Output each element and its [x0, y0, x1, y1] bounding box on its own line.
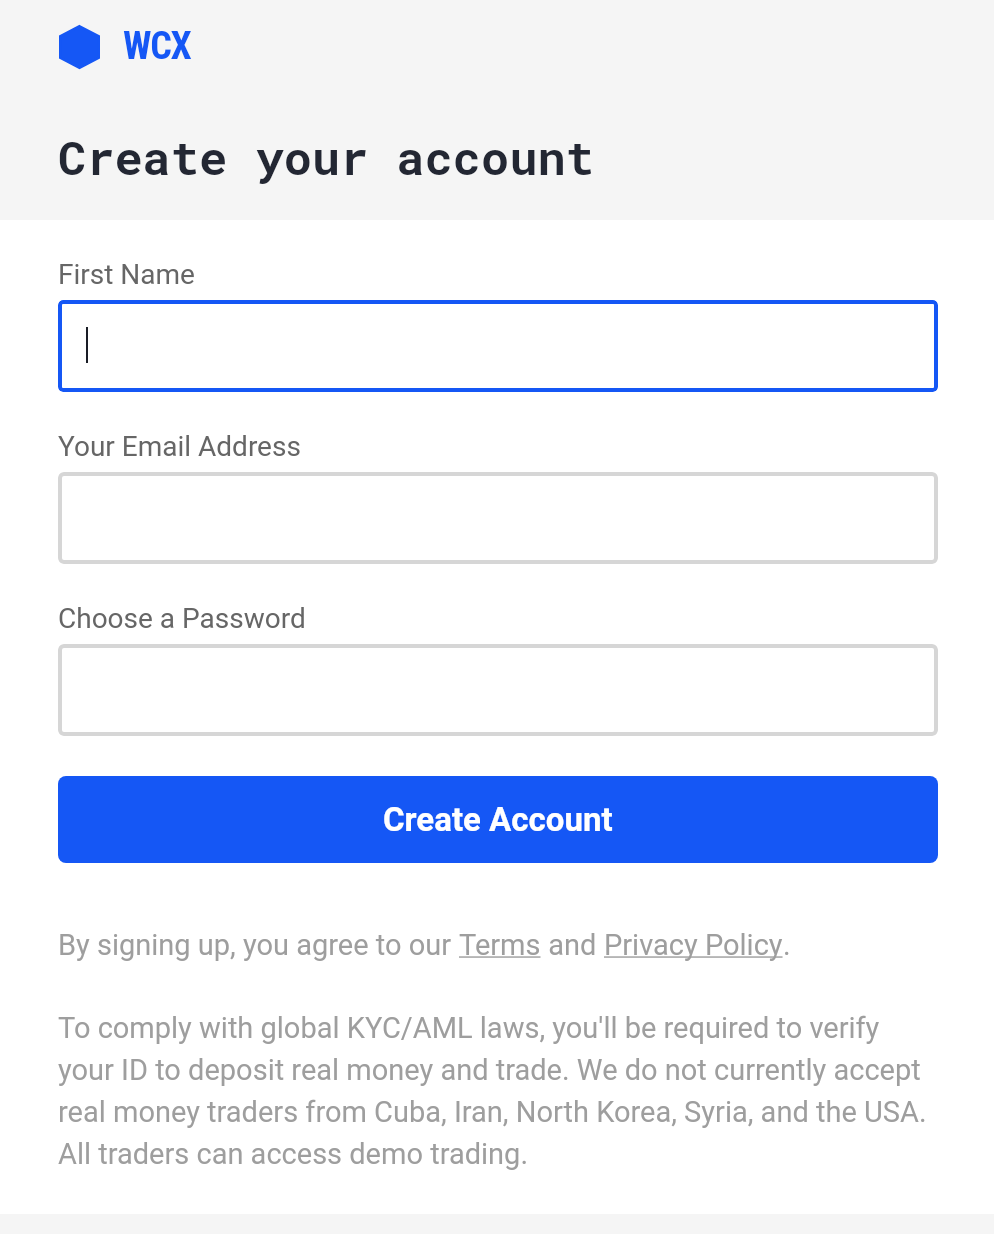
button[interactable]: Privacy Policy [604, 928, 783, 962]
button[interactable]: WCX home [59, 24, 191, 69]
staticText: Create Account [383, 800, 613, 839]
staticText: Choose a Password [58, 602, 306, 635]
button[interactable]: Create Account [58, 776, 938, 863]
staticText: To comply with global KYC/AML laws, you'… [58, 1011, 938, 1171]
button[interactable]: First Name input [58, 300, 938, 392]
staticText: Create your account [58, 126, 594, 188]
staticText: . [783, 928, 791, 962]
button[interactable]: Your Email Address input [58, 472, 938, 564]
button[interactable]: Choose a Password input [58, 644, 938, 736]
staticText: and [541, 928, 604, 962]
staticText: WCX [123, 24, 191, 69]
button[interactable]: Terms [459, 928, 541, 962]
staticText: First Name [58, 258, 195, 291]
staticText: Your Email Address [58, 430, 301, 463]
staticText: By signing up, you agree to our [58, 928, 459, 962]
